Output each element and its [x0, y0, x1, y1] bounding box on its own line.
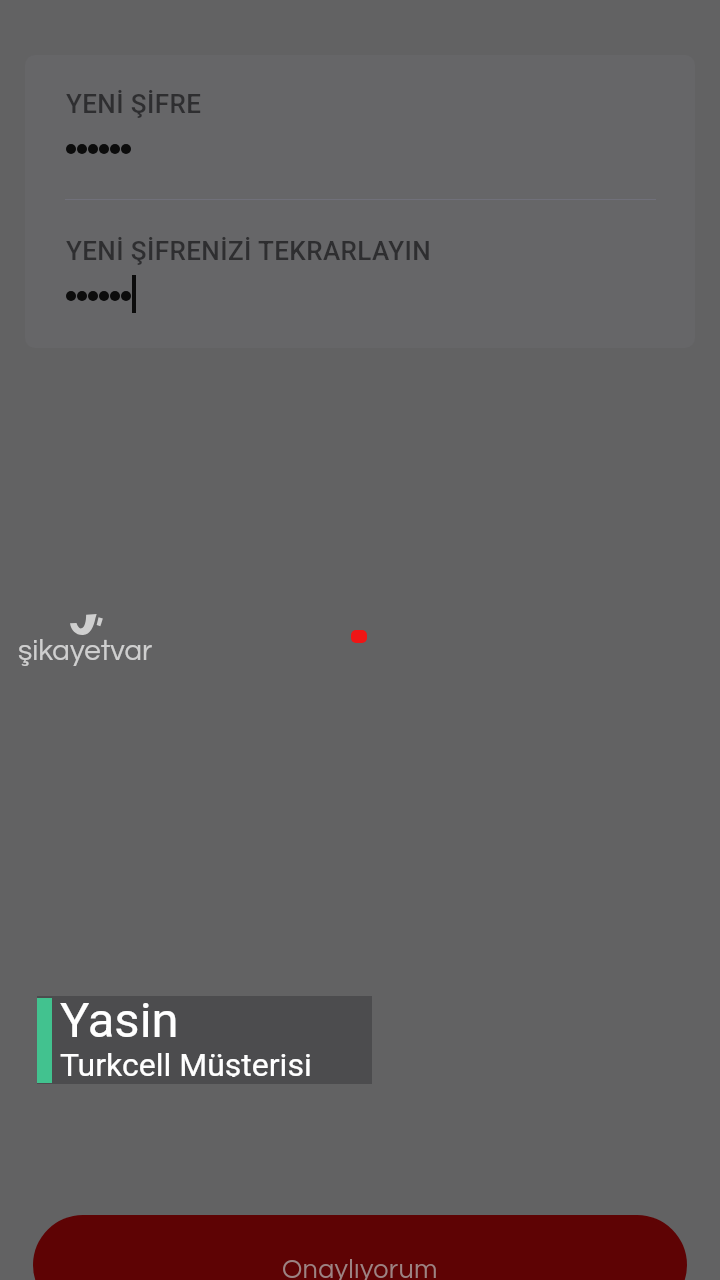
- button[interactable]: Yasin: [37, 996, 372, 1084]
- other: şikayetvar logo: [70, 614, 101, 635]
- staticText: YENİ ŞİFRENİZİ TEKRARLAYIN: [66, 236, 432, 266]
- staticText: şikayetvar: [18, 636, 153, 666]
- other: Recording indicator: [351, 630, 367, 643]
- staticText: Turkcell Müşterisi: [60, 1046, 312, 1077]
- button[interactable]: Onaylıyorum: [33, 1215, 687, 1280]
- button[interactable]: YENİ ŞİFRE: [65, 75, 656, 199]
- staticText: YENİ ŞİFRE: [66, 89, 202, 119]
- staticText: Yasin: [60, 992, 179, 1049]
- staticText: Onaylıyorum: [282, 1256, 438, 1280]
- button[interactable]: YENİ ŞİFRENİZİ TEKRARLAYIN: [65, 215, 656, 330]
